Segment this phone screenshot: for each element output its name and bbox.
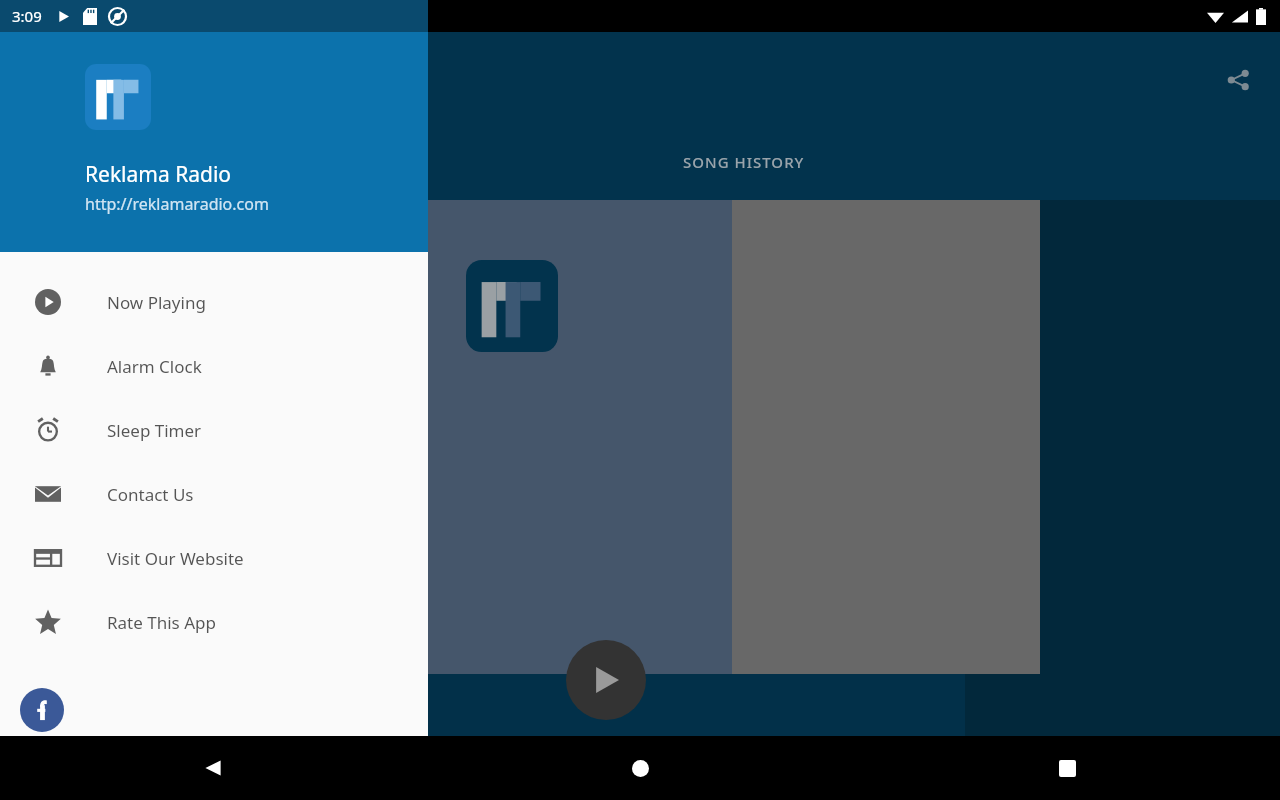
staticText: 3:09	[12, 6, 42, 26]
button[interactable]: Share	[1216, 58, 1260, 102]
button[interactable]: Alarm Clock	[0, 334, 428, 398]
staticText: Alarm Clock	[107, 355, 202, 378]
button[interactable]: Rate This App	[0, 590, 428, 654]
staticText: Sleep Timer	[107, 419, 202, 442]
button[interactable]: Sleep Timer	[0, 398, 428, 462]
button[interactable]: Home	[616, 744, 664, 792]
button[interactable]: Recents	[1043, 744, 1091, 792]
staticText: Contact Us	[107, 483, 194, 506]
staticText: Visit Our Website	[107, 547, 244, 570]
staticText: Rate This App	[107, 611, 216, 634]
button[interactable]: Contact Us	[0, 462, 428, 526]
button[interactable]: Facebook	[20, 688, 64, 732]
button[interactable]: Back	[189, 744, 237, 792]
staticText: Now Playing	[107, 291, 206, 314]
staticText: http://reklamaradio.com	[85, 193, 269, 215]
button[interactable]: Now Playing	[0, 270, 428, 334]
button[interactable]: Play	[566, 640, 646, 720]
button[interactable]: Visit Our Website	[0, 526, 428, 590]
staticText: Reklama Radio	[85, 160, 232, 189]
button[interactable]: SONG HISTORY	[683, 152, 805, 172]
